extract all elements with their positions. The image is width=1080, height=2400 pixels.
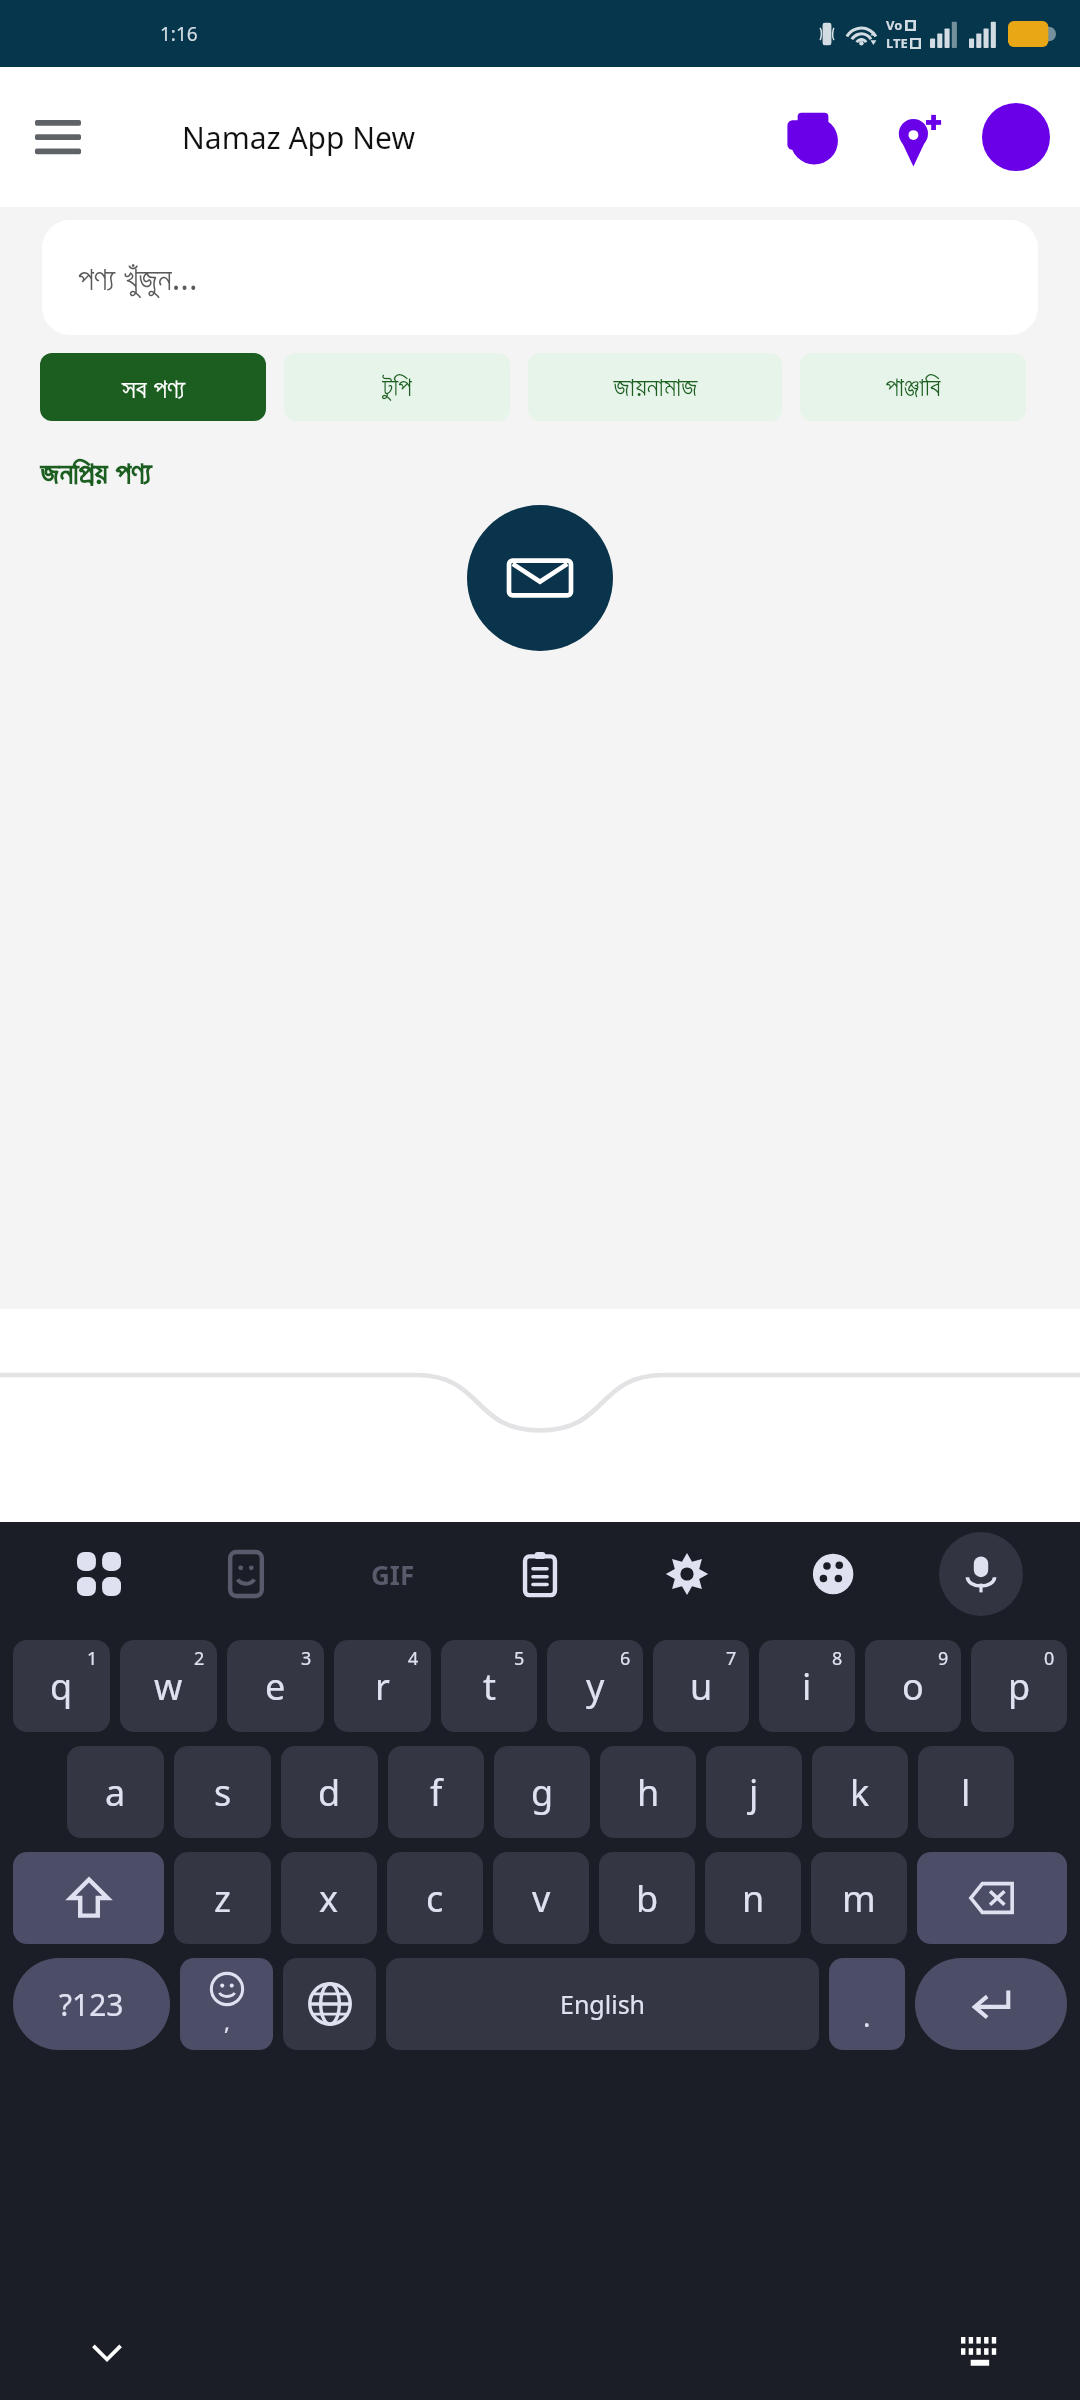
button[interactable]: f bbox=[388, 1746, 484, 1838]
staticText: English bbox=[560, 1987, 646, 2021]
button[interactable]: Backspace bbox=[917, 1852, 1067, 1944]
button[interactable]: Clipboard bbox=[466, 1530, 613, 1618]
staticText: k bbox=[850, 1768, 870, 1817]
staticText: Vo bbox=[886, 16, 903, 34]
button[interactable]: e bbox=[227, 1640, 324, 1732]
button[interactable]: Stickers bbox=[172, 1530, 319, 1618]
button[interactable]: Voice input bbox=[939, 1532, 1023, 1616]
staticText: w bbox=[154, 1662, 183, 1711]
button[interactable]: k bbox=[812, 1746, 908, 1838]
staticText: v bbox=[532, 1874, 551, 1923]
staticText: GIF bbox=[371, 1557, 415, 1592]
staticText: 1:16 bbox=[160, 21, 198, 47]
button[interactable]: Change keyboard bbox=[948, 2317, 1018, 2387]
button[interactable]: c bbox=[387, 1852, 483, 1944]
staticText: x bbox=[319, 1874, 339, 1923]
staticText: পণ্য খুঁজুন... bbox=[78, 256, 198, 300]
button[interactable]: j bbox=[706, 1746, 802, 1838]
staticText: , bbox=[224, 2006, 230, 2036]
staticText: 3 bbox=[301, 1646, 312, 1671]
staticText: p bbox=[1008, 1662, 1031, 1711]
button[interactable]: p bbox=[971, 1640, 1067, 1732]
button[interactable]: s bbox=[174, 1746, 271, 1838]
button[interactable]: Enter bbox=[915, 1958, 1067, 2050]
button[interactable]: a bbox=[67, 1746, 164, 1838]
button[interactable]: পণ্য খুঁজুন... bbox=[42, 220, 1038, 335]
button[interactable]: r bbox=[334, 1640, 431, 1732]
staticText: 0 bbox=[1044, 1646, 1055, 1671]
button[interactable]: h bbox=[600, 1746, 696, 1838]
button[interactable]: m bbox=[811, 1852, 907, 1944]
button[interactable]: ?123 bbox=[13, 1958, 170, 2050]
button[interactable]: Emoji bbox=[180, 1958, 273, 2050]
staticText: e bbox=[265, 1662, 286, 1711]
button[interactable]: Hide keyboard bbox=[72, 2317, 142, 2387]
staticText: পাঞ্জাবি bbox=[885, 374, 941, 401]
staticText: 4 bbox=[408, 1646, 419, 1671]
button[interactable]: পাঞ্জাবি bbox=[800, 353, 1026, 421]
staticText: u bbox=[690, 1662, 713, 1711]
button[interactable]: GIF bbox=[319, 1530, 466, 1618]
staticText: 9 bbox=[938, 1646, 949, 1671]
staticText: i bbox=[802, 1662, 812, 1711]
button[interactable]: English bbox=[386, 1958, 819, 2050]
button[interactable]: Profile bbox=[982, 103, 1050, 171]
staticText: n bbox=[742, 1874, 765, 1923]
button[interactable]: Settings bbox=[613, 1530, 760, 1618]
staticText: . bbox=[863, 1997, 871, 2035]
staticText: ?123 bbox=[59, 1984, 124, 2025]
button[interactable]: u bbox=[653, 1640, 749, 1732]
staticText: 8 bbox=[832, 1646, 843, 1671]
staticText: 1 bbox=[87, 1646, 98, 1671]
button[interactable]: z bbox=[174, 1852, 271, 1944]
staticText: h bbox=[637, 1768, 660, 1817]
button[interactable]: Open navigation menu bbox=[28, 107, 88, 167]
staticText: r bbox=[375, 1662, 390, 1711]
button[interactable]: w bbox=[120, 1640, 217, 1732]
staticText: জায়নামাজ bbox=[613, 374, 698, 401]
button[interactable]: i bbox=[759, 1640, 855, 1732]
button[interactable]: d bbox=[281, 1746, 378, 1838]
staticText: সব পণ্য bbox=[122, 369, 185, 406]
button[interactable]: g bbox=[494, 1746, 590, 1838]
button[interactable]: y bbox=[547, 1640, 643, 1732]
staticText: m bbox=[842, 1874, 876, 1923]
button[interactable]: জায়নামাজ bbox=[528, 353, 782, 421]
button[interactable]: Cart bbox=[774, 98, 852, 176]
button[interactable]: Themes bbox=[760, 1530, 907, 1618]
button[interactable]: n bbox=[705, 1852, 801, 1944]
staticText: f bbox=[430, 1768, 443, 1817]
staticText: 6 bbox=[620, 1646, 631, 1671]
button[interactable]: b bbox=[599, 1852, 695, 1944]
staticText: g bbox=[531, 1768, 554, 1817]
button[interactable]: l bbox=[918, 1746, 1014, 1838]
staticText: q bbox=[50, 1662, 73, 1711]
staticText: d bbox=[318, 1768, 341, 1817]
button[interactable]: সব পণ্য bbox=[40, 353, 266, 421]
staticText: Namaz App New bbox=[182, 117, 415, 158]
button[interactable]: Shift bbox=[13, 1852, 164, 1944]
staticText: c bbox=[426, 1874, 444, 1923]
button[interactable]: x bbox=[281, 1852, 377, 1944]
button[interactable]: Keyboard layouts bbox=[26, 1530, 172, 1618]
button[interactable]: Messages bbox=[467, 505, 613, 651]
staticText: LTE bbox=[886, 34, 908, 52]
button[interactable]: Switch language bbox=[283, 1958, 376, 2050]
staticText: a bbox=[105, 1768, 126, 1817]
button[interactable]: q bbox=[13, 1640, 110, 1732]
button[interactable]: t bbox=[441, 1640, 537, 1732]
button[interactable]: Add location bbox=[886, 104, 952, 170]
staticText: z bbox=[214, 1874, 231, 1923]
staticText: 5 bbox=[514, 1646, 525, 1671]
button[interactable]: টুপি bbox=[284, 353, 510, 421]
staticText: জনপ্রিয় পণ্য bbox=[40, 451, 152, 493]
button[interactable]: o bbox=[865, 1640, 961, 1732]
staticText: s bbox=[214, 1768, 232, 1817]
staticText: 7 bbox=[726, 1646, 737, 1671]
button[interactable]: . bbox=[829, 1958, 905, 2050]
button[interactable]: v bbox=[493, 1852, 589, 1944]
staticText: টুপি bbox=[382, 374, 412, 401]
staticText: 2 bbox=[194, 1646, 205, 1671]
staticText: t bbox=[483, 1662, 496, 1711]
staticText: l bbox=[961, 1768, 971, 1817]
